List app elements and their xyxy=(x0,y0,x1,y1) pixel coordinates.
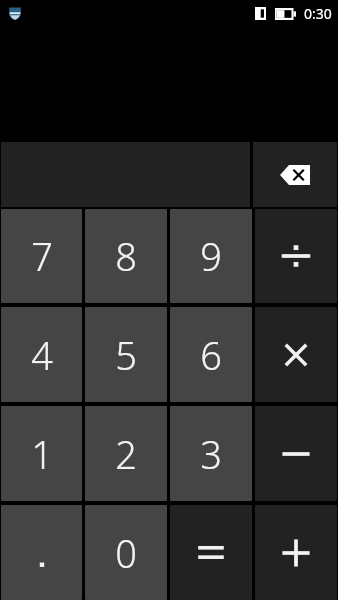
staticText: 0 xyxy=(115,527,137,579)
staticText: 4 xyxy=(31,329,53,381)
button[interactable]: Backspace xyxy=(253,142,337,207)
button[interactable]: 6 xyxy=(170,307,252,402)
button[interactable]: 3 xyxy=(170,406,252,501)
other: Plus xyxy=(279,536,313,570)
button[interactable]: Divide xyxy=(255,209,337,303)
button[interactable]: Equals xyxy=(170,505,252,600)
button[interactable]: 1 xyxy=(1,406,82,501)
staticText: 6 xyxy=(200,329,222,381)
button[interactable]: Decimal point xyxy=(1,505,82,600)
staticText: 3 xyxy=(200,428,222,480)
staticText: 8 xyxy=(115,230,137,282)
button[interactable]: 0 xyxy=(85,505,167,600)
other: Equals xyxy=(195,540,227,566)
staticText: 2 xyxy=(115,428,137,480)
button[interactable]: 5 xyxy=(85,307,167,402)
button[interactable]: Minus xyxy=(255,406,337,501)
button[interactable]: 8 xyxy=(85,209,167,303)
button[interactable]: Multiply xyxy=(255,307,337,402)
other: Divide xyxy=(279,239,313,273)
staticText: 9 xyxy=(200,230,222,282)
other: Decimal point xyxy=(25,536,59,570)
other: Minus xyxy=(279,437,313,471)
staticText: 7 xyxy=(31,230,53,282)
staticText: 0:30 xyxy=(304,4,332,23)
button[interactable]: 9 xyxy=(170,209,252,303)
other: Multiply xyxy=(280,339,312,371)
button[interactable]: Plus xyxy=(255,505,337,600)
button[interactable]: 7 xyxy=(1,209,82,303)
staticText: 1 xyxy=(31,428,53,480)
button[interactable]: 4 xyxy=(1,307,82,402)
button[interactable]: 2 xyxy=(85,406,167,501)
staticText: 5 xyxy=(115,329,137,381)
